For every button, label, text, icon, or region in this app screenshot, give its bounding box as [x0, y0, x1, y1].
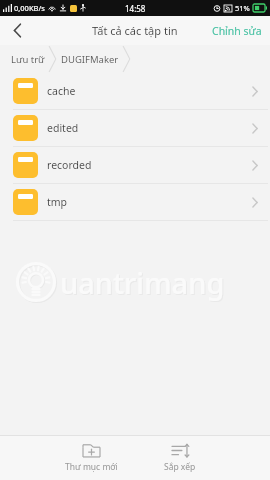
button[interactable]: Thư mục mới: [59, 441, 124, 475]
staticText: uantrimang: [61, 264, 226, 303]
staticText: Tất cả các tập tin: [92, 23, 178, 38]
staticText: 0,00KB/s: [14, 3, 45, 13]
button[interactable]: recorded: [0, 147, 270, 184]
staticText: 51%: [235, 3, 250, 13]
staticText: Sắp xếp: [164, 461, 196, 473]
staticText: Lưu trữ: [11, 53, 45, 66]
staticText: uantrimang: [60, 263, 225, 302]
button[interactable]: Sắp xếp: [158, 441, 202, 475]
staticText: tmp: [47, 195, 68, 209]
staticText: recorded: [47, 158, 92, 172]
staticText: Chỉnh sửa: [212, 24, 262, 38]
staticText: cache: [47, 84, 76, 98]
button[interactable]: edited: [0, 110, 270, 147]
staticText: Thư mục mới: [65, 461, 118, 473]
staticText: 14:58: [125, 3, 146, 14]
button[interactable]: Back: [0, 16, 34, 45]
button[interactable]: DUGIFMaker: [60, 53, 120, 66]
button[interactable]: Lưu trữ: [10, 53, 46, 66]
button[interactable]: cache: [0, 73, 270, 110]
staticText: edited: [47, 121, 79, 135]
staticText: DUGIFMaker: [61, 53, 119, 66]
button[interactable]: Chỉnh sửa: [204, 16, 270, 45]
button[interactable]: tmp: [0, 184, 270, 221]
